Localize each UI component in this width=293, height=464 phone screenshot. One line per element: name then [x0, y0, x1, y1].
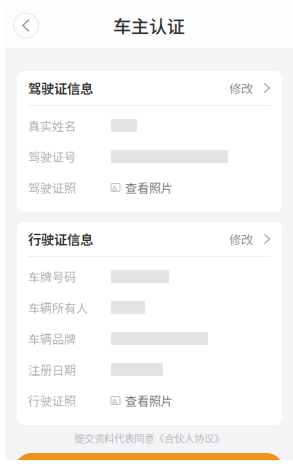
button[interactable]: 驾驶证信息	[17, 71, 282, 105]
staticText: 驾驶证照	[28, 179, 76, 196]
button[interactable]: 查看照片	[111, 176, 173, 198]
staticText: 车主认证	[113, 12, 185, 39]
staticText: 查看照片	[125, 179, 173, 196]
staticText: 驾驶证号	[28, 148, 76, 165]
staticText: 车辆所有人	[28, 299, 88, 316]
staticText: 注册日期	[28, 361, 76, 378]
staticText: 修改	[229, 230, 253, 248]
staticText: 驾驶证信息	[28, 78, 93, 98]
staticText: 行驶证照	[28, 392, 76, 409]
button[interactable]: 行驶证信息	[17, 222, 282, 256]
button[interactable]: 查看照片	[111, 389, 173, 411]
staticText: 修改	[229, 79, 253, 97]
staticText: 行驶证信息	[28, 229, 93, 249]
button[interactable]: 返回	[7, 6, 45, 44]
staticText: 车辆品牌	[28, 330, 76, 347]
button[interactable]: 提交	[14, 453, 284, 464]
staticText: 提交	[133, 459, 165, 464]
staticText: 车牌号码	[28, 268, 76, 285]
staticText: 提交资料代表同意《合伙人协议》	[74, 430, 224, 446]
staticText: 真实姓名	[28, 117, 76, 134]
staticText: 查看照片	[125, 392, 173, 409]
